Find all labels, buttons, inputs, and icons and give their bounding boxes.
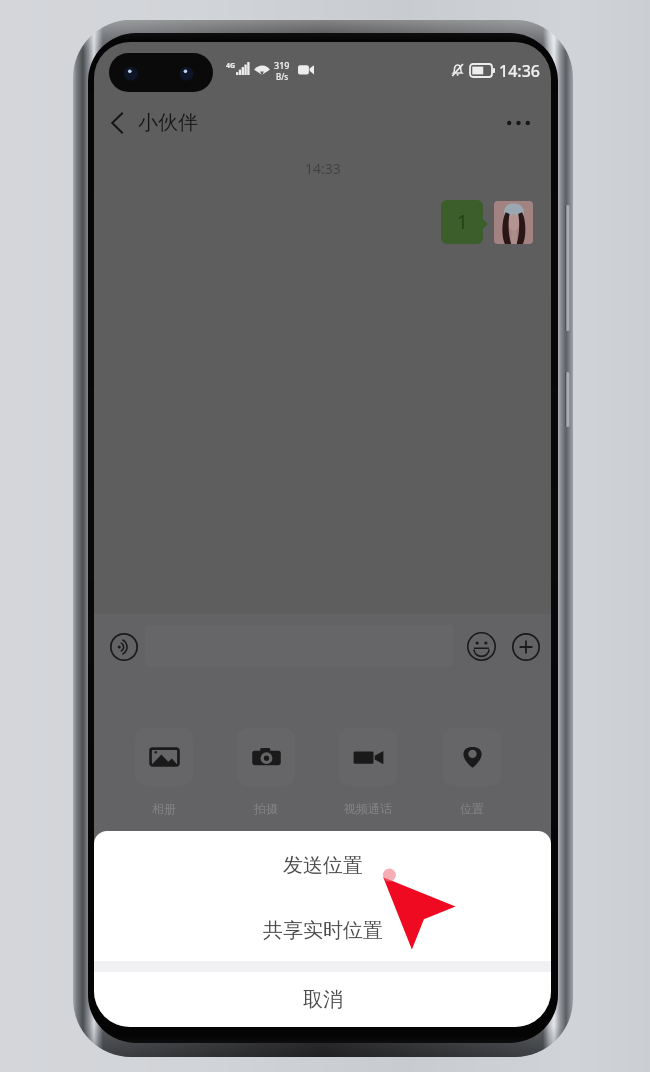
button[interactable]: 拍摄	[223, 728, 309, 816]
staticText: 4G	[226, 61, 236, 71]
staticText: 相册	[152, 801, 176, 816]
staticText: B/s	[276, 71, 289, 82]
button[interactable]: Back	[95, 100, 139, 145]
button[interactable]: 相册	[121, 728, 207, 816]
button[interactable]: 视频通话	[325, 728, 411, 816]
button[interactable]: 1	[441, 200, 483, 244]
staticText: 小伙伴	[138, 110, 198, 135]
button[interactable]: More	[504, 625, 547, 668]
staticText: 拍摄	[254, 801, 278, 816]
button[interactable]: 位置	[429, 728, 515, 816]
staticText: 发送位置	[283, 853, 363, 878]
button[interactable]: Avatar	[494, 201, 533, 244]
button[interactable]: 发送位置	[94, 831, 551, 899]
button[interactable]: 共享实时位置	[94, 899, 551, 961]
button[interactable]: More options	[496, 101, 540, 145]
staticText: 共享实时位置	[263, 918, 383, 943]
staticText: 14:36	[499, 60, 540, 82]
button[interactable]: 取消	[94, 972, 551, 1027]
staticText: 视频通话	[344, 801, 392, 816]
staticText: 取消	[303, 987, 343, 1012]
staticText: 14:33	[305, 159, 341, 178]
staticText: 位置	[460, 801, 484, 816]
staticText: 1	[457, 209, 468, 235]
button[interactable]: Emoji	[460, 625, 503, 668]
staticText: 319	[274, 59, 290, 71]
button[interactable]: Voice input	[102, 625, 145, 668]
